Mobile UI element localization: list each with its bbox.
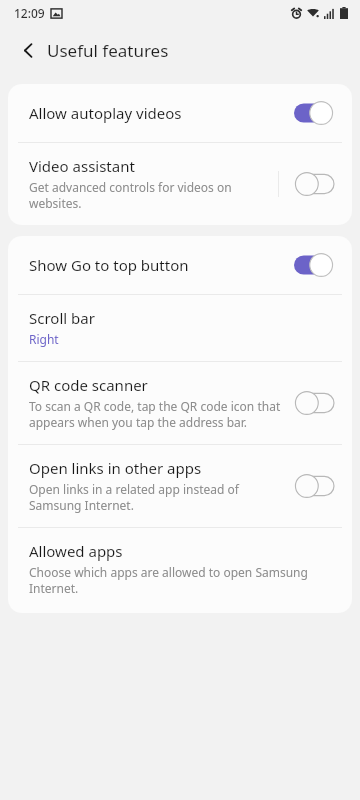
staticText: Allowed apps <box>29 541 123 561</box>
staticText: Video assistant <box>29 156 135 176</box>
staticText: Scroll bar <box>29 308 95 328</box>
button[interactable]: Show Go to top button, on <box>292 251 338 279</box>
button[interactable]: Allow autoplay videos, on <box>292 99 338 127</box>
staticText: Allow autoplay videos <box>29 103 182 123</box>
staticText: 12:09 <box>14 5 45 21</box>
button[interactable]: Open links in other apps, off <box>292 472 338 500</box>
staticText: Choose which apps are allowed to open Sa… <box>29 564 328 596</box>
button[interactable]: Open links in other apps <box>8 445 352 527</box>
staticText: Open links in a related app instead of S… <box>29 481 282 513</box>
button[interactable]: Show Go to top button <box>8 236 352 294</box>
button[interactable]: Back <box>9 31 47 69</box>
button[interactable]: Allowed apps <box>8 528 352 613</box>
staticText: QR code scanner <box>29 375 148 395</box>
button[interactable]: QR code scanner <box>8 362 352 444</box>
button[interactable]: Allow autoplay videos <box>8 84 352 142</box>
staticText: Open links in other apps <box>29 458 202 478</box>
button[interactable]: Scroll bar <box>8 295 352 361</box>
staticText: Right <box>29 331 59 347</box>
staticText: Useful features <box>47 39 169 62</box>
button[interactable]: QR code scanner, off <box>292 389 338 417</box>
staticText: To scan a QR code, tap the QR code icon … <box>29 398 282 430</box>
button[interactable]: Video assistant, off <box>292 170 338 198</box>
staticText: Show Go to top button <box>29 255 189 275</box>
button[interactable]: Video assistant <box>8 143 352 225</box>
staticText: Get advanced controls for videos on webs… <box>29 179 268 211</box>
